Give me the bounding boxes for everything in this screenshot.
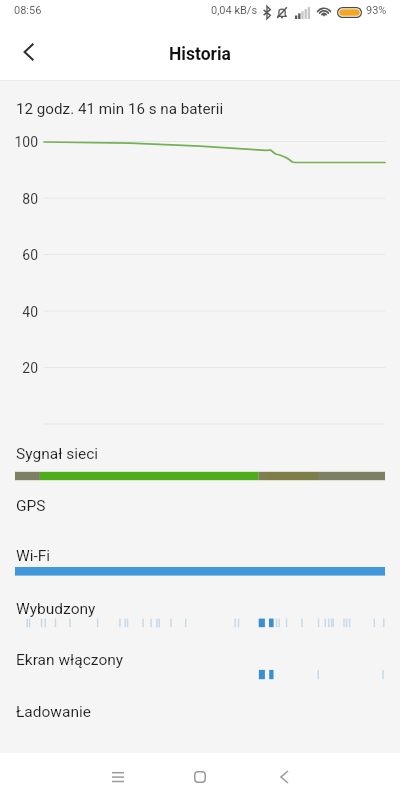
staticText: GPS	[16, 497, 46, 515]
staticText: Wybudzony	[16, 600, 96, 618]
button[interactable]: Ekran włączony	[0, 651, 400, 697]
button[interactable]: Wybudzony	[0, 600, 400, 646]
staticText: 20	[0, 360, 38, 376]
button[interactable]: GPS	[0, 497, 400, 543]
staticText: 08:56	[14, 4, 42, 17]
button[interactable]: Ładowanie	[0, 703, 400, 749]
staticText: 80	[0, 191, 38, 207]
button[interactable]: Back	[10, 33, 48, 71]
staticText: 12 godz. 41 min 16 s na baterii	[16, 100, 224, 118]
staticText: 60	[0, 247, 38, 263]
button[interactable]: Sygnał sieci	[0, 445, 400, 491]
staticText: 40	[0, 304, 38, 320]
button[interactable]: Wi-Fi	[0, 547, 400, 593]
staticText: Ekran włączony	[16, 651, 124, 669]
button[interactable]: Recent apps	[96, 755, 140, 799]
staticText: Sygnał sieci	[16, 445, 99, 463]
staticText: Wi-Fi	[16, 547, 51, 565]
button[interactable]: Back	[262, 755, 306, 799]
staticText: Ładowanie	[16, 703, 91, 721]
button[interactable]: Home	[178, 755, 222, 799]
staticText: 0,04 kB/s	[211, 4, 258, 17]
staticText: Historia	[169, 44, 231, 65]
staticText: 100	[0, 134, 38, 150]
staticText: 93%	[366, 4, 387, 17]
